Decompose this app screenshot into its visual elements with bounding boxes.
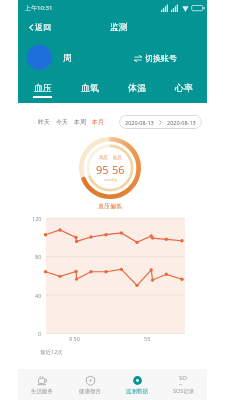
button[interactable]: 切换账号 [132,50,179,66]
staticText: 返回 [35,22,51,32]
staticText: 本月 [92,118,104,126]
button[interactable]: 返回 [26,19,54,35]
staticText: 56 [112,162,125,177]
button[interactable]: 本周 [71,115,89,129]
staticText: mmHg [104,177,117,182]
button[interactable]: 本月 [89,115,107,129]
button[interactable]: 体温 [113,77,160,103]
button[interactable]: 心率 [160,77,207,103]
staticText: 2020-08-13 [167,119,196,126]
staticText: 2020-08-13 [125,119,154,126]
staticText: 0 [38,330,42,337]
button[interactable]: 今天 [53,115,71,129]
button[interactable]: 健康报告 [66,369,113,400]
button[interactable]: 昨天 [35,115,53,129]
staticText: 95 [96,162,109,177]
staticText: 120 [32,215,42,222]
staticText: 低压 [113,155,122,161]
button[interactable]: 2020-08-13 [119,115,202,129]
staticText: 血压偏低 [98,202,122,210]
button[interactable]: 血压 [18,77,66,103]
button[interactable]: SOS [160,369,207,400]
button[interactable]: 血氧 [66,77,113,103]
staticText: 血压 [34,82,52,93]
staticText: 切换账号 [145,53,177,63]
staticText: 监测 [110,21,128,32]
staticText: 40 [35,292,42,299]
staticText: 生活服务 [31,388,53,395]
button[interactable]: 监测数据 [113,369,160,400]
staticText: 9 50 [69,335,80,342]
staticText: 最近12次 [40,348,63,356]
staticText: 本周 [74,118,86,126]
staticText: 55 [144,335,151,342]
staticText: 今天 [56,118,68,126]
staticText: SOS记录 [173,387,195,395]
staticText: 监测数据 [126,388,148,395]
button[interactable]: 生活服务 [18,369,66,400]
staticText: 80 [35,253,42,260]
staticText: 心率 [175,82,193,93]
staticText: SOS [179,374,190,385]
staticText: 上午10:31 [25,4,53,12]
staticText: 周 [63,52,72,63]
staticText: 高压 [99,155,108,161]
staticText: 健康报告 [79,388,101,395]
staticText: 血氧 [81,82,99,93]
staticText: 昨天 [38,118,50,126]
staticText: 体温 [128,82,146,93]
other: Status icons [161,4,201,12]
